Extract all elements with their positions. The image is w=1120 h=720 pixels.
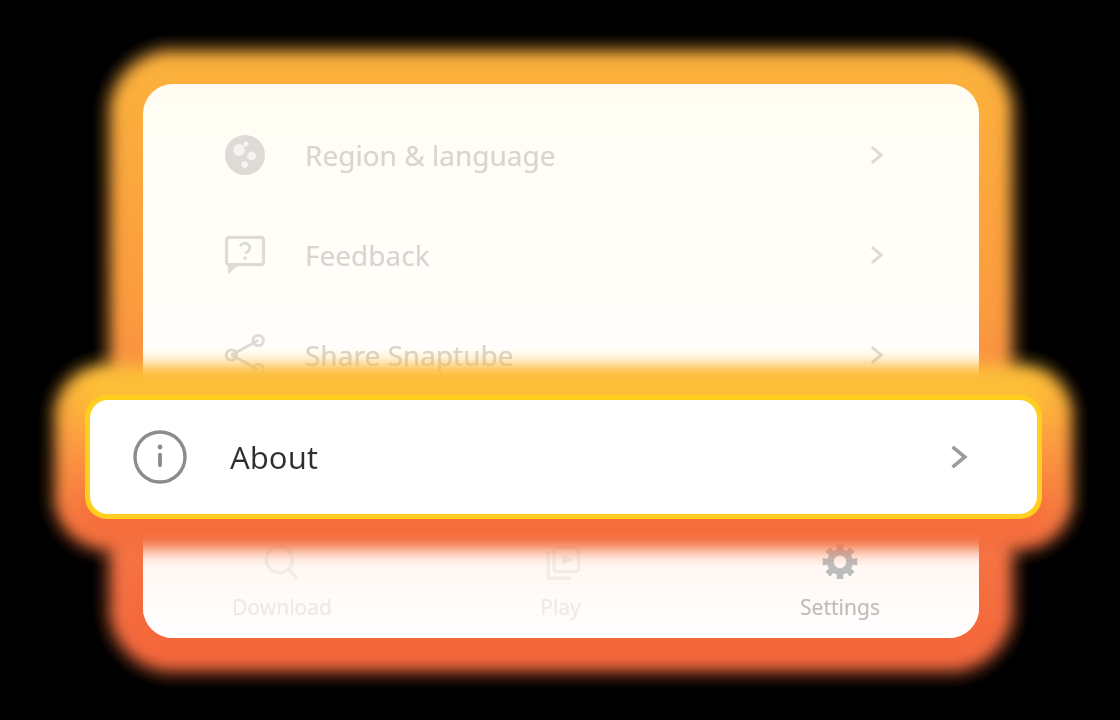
button[interactable]: About (90, 400, 1037, 514)
button[interactable]: Play (421, 526, 700, 638)
staticText: Feedback (305, 236, 430, 274)
button[interactable]: Region & language (143, 105, 979, 205)
staticText: Download (232, 593, 332, 622)
staticText: Share Snaptube (305, 336, 514, 374)
staticText: About (230, 436, 318, 478)
button[interactable]: Feedback (143, 205, 979, 305)
staticText: Settings (800, 593, 880, 622)
staticText: Region & language (305, 136, 556, 174)
button[interactable]: Download (143, 526, 421, 638)
staticText: Play (540, 593, 581, 622)
button[interactable]: Share Snaptube (143, 305, 979, 405)
button[interactable]: Settings (700, 526, 979, 638)
